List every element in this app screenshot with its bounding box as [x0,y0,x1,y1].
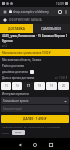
staticText: 19 [50,84,53,88]
staticText: Бурная [2,39,13,43]
button[interactable]: 17 [23,82,33,90]
button[interactable]: More options [63,9,69,15]
staticText: 0,00 ₽ [2,131,10,134]
button[interactable]: Ближайшее время [1,97,69,104]
button[interactable]: Home [29,139,40,150]
button[interactable]: Account [2,9,8,15]
staticText: Минимальная сумма заказа 1000 ₽ [2,51,51,55]
staticText: САМОВЫВОЗ [41,27,62,31]
button[interactable]: 16 [12,82,22,90]
button[interactable]: САМОВЫВОЗ [33,24,70,33]
staticText: Район доставки [2,64,25,68]
button[interactable]: 19 [46,82,57,90]
staticText: 12:09 [56,2,64,6]
staticText: Нажимая кнопку, вы соглашаетесь с услови… [2,125,61,128]
staticText: 20 [62,84,65,88]
button[interactable]: 15 [1,82,11,90]
staticText: 4 [59,11,61,14]
staticText: далее [15,131,22,134]
button[interactable]: ДАЛЕЕ · 1 490 ₽ [1,115,69,123]
staticText: Комментарий [3,107,22,111]
staticText: 18 [38,84,41,88]
button[interactable]: Recent apps [45,139,56,150]
staticText: от 2 [2,44,7,48]
staticText: Ближайшее время [3,99,29,103]
button[interactable]: Комментарий [1,105,69,112]
button[interactable]: 20 [58,82,69,90]
button[interactable]: Tabs [57,9,62,14]
staticText: 4245, улиц Никольская · 15 Базовая Верси… [2,34,68,38]
staticText: 15 [5,84,8,88]
button[interactable]: дешёвая доставка [2,70,34,74]
button[interactable]: Минимальная сумма заказа 1000 ₽ [0,49,70,56]
staticText: дешёвая доставка [2,70,28,74]
staticText: 17 [27,84,30,88]
staticText: Интервал времени [2,92,29,96]
staticText: 16 [16,84,19,88]
button[interactable]: shop.example.ru/delivery [13,10,57,14]
staticText: от 1 500 ₽ [55,76,68,80]
staticText: Московская область, Химки [2,58,42,62]
staticText: ДОСТАВКА [8,27,25,31]
staticText: ОФОРМЛЕНИЕ ЗАКАЗА [9,18,42,22]
button[interactable]: Back [14,139,25,150]
button[interactable]: ДОСТАВКА [0,24,33,33]
button[interactable]: далее [12,130,25,135]
staticText: ДАЛЕЕ · 1 490 ₽ [23,117,47,121]
button[interactable]: 18 [34,82,45,90]
staticText: Дата и время доставки [2,76,35,80]
